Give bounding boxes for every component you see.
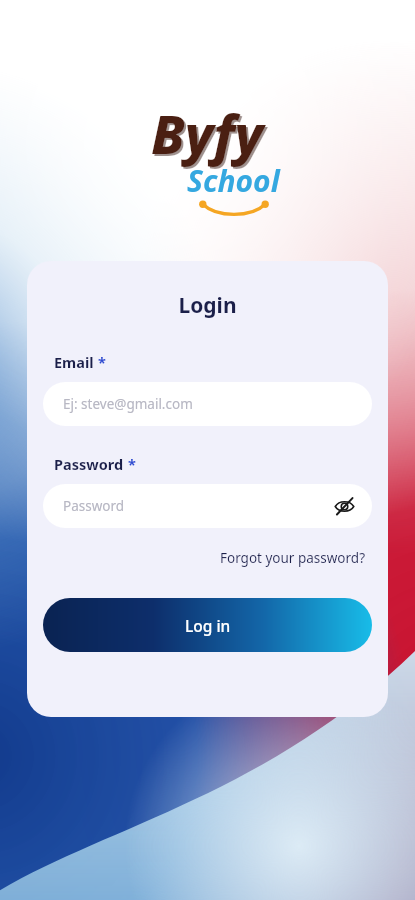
button[interactable]: Show password (330, 492, 358, 520)
button[interactable]: Log in (43, 598, 372, 652)
staticText: Byfy (151, 96, 264, 170)
button[interactable]: Forgot your password? (214, 546, 372, 570)
staticText: School (187, 160, 280, 201)
staticText: Byfy (153, 98, 266, 172)
button[interactable]: Ej: steve@gmail.com (43, 382, 372, 426)
staticText: * (98, 352, 106, 372)
staticText: Ej: steve@gmail.com (63, 395, 358, 413)
staticText: Password (63, 497, 330, 515)
staticText: Login (43, 291, 372, 320)
staticText: Email (54, 352, 94, 372)
staticText: * (128, 454, 136, 474)
staticText: Forgot your password? (220, 549, 366, 567)
staticText: Log in (185, 615, 231, 636)
button[interactable]: Password (43, 484, 372, 528)
staticText: Password (54, 454, 124, 474)
